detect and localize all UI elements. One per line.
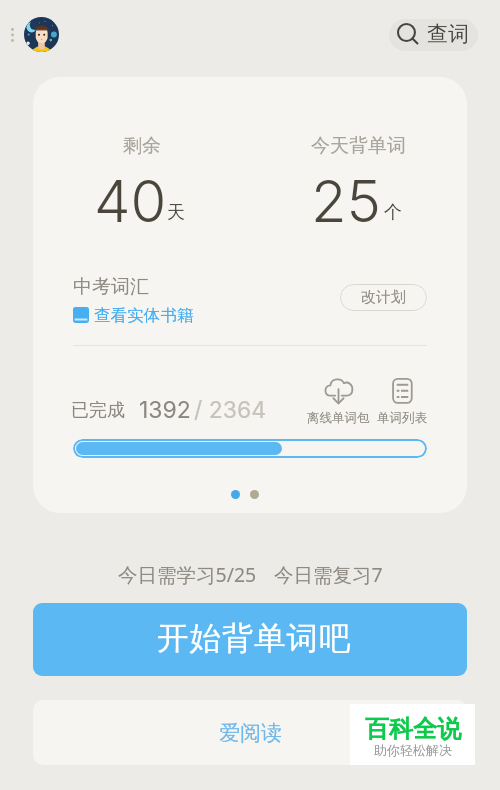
- staticText: 单词列表: [377, 410, 427, 426]
- staticText: 开始背单词吧: [157, 619, 352, 659]
- staticText: 剩余: [123, 134, 161, 158]
- button[interactable]: 爱阅读: [33, 700, 467, 765]
- button[interactable]: Profile: [24, 17, 59, 52]
- staticText: 今天背单词: [311, 134, 406, 158]
- button[interactable]: 查词: [389, 19, 478, 51]
- button[interactable]: 开始背单词吧: [33, 603, 467, 676]
- staticText: 已完成: [71, 399, 125, 422]
- staticText: 今日需学习5/25: [118, 561, 257, 588]
- staticText: 百科全说: [365, 714, 461, 744]
- button[interactable]: 离线单词包: [307, 374, 370, 423]
- staticText: 1392: [139, 396, 191, 424]
- staticText: 爱阅读: [219, 720, 282, 746]
- staticText: 今日需复习7: [274, 561, 383, 588]
- button[interactable]: 单词列表: [377, 374, 427, 423]
- staticText: 查看实体书籍: [94, 305, 194, 326]
- staticText: 助你轻松解决: [374, 742, 452, 758]
- staticText: 离线单词包: [307, 410, 370, 426]
- staticText: 改计划: [361, 288, 406, 307]
- staticText: 25: [311, 166, 382, 236]
- staticText: 40: [94, 166, 167, 236]
- button[interactable]: 改计划: [340, 284, 427, 311]
- staticText: 天: [167, 201, 185, 224]
- staticText: / 2364: [194, 396, 267, 424]
- button[interactable]: 查看实体书籍: [73, 305, 189, 326]
- staticText: 中考词汇: [73, 275, 149, 299]
- staticText: 查词: [427, 21, 469, 47]
- staticText: 个: [384, 201, 402, 224]
